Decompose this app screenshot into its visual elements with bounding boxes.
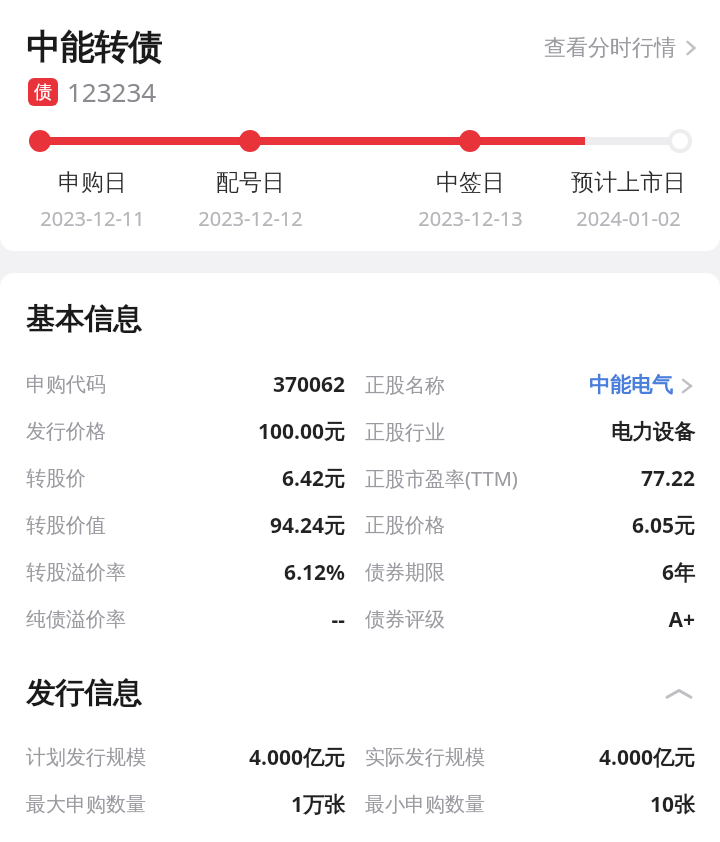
staticText: 转股价值 — [26, 513, 106, 538]
staticText: 中能电气 — [589, 372, 673, 398]
staticText: 正股名称 — [365, 373, 445, 398]
staticText: 申购日 — [58, 168, 127, 197]
staticText: 123234 — [67, 74, 157, 109]
staticText: 纯债溢价率 — [26, 607, 126, 632]
staticText: 最小申购数量 — [365, 792, 485, 817]
staticText: 查看分时行情 — [544, 34, 676, 62]
staticText: 转股价 — [26, 466, 86, 491]
staticText: 最大申购数量 — [26, 792, 146, 817]
staticText: 4.000亿元 — [249, 743, 345, 772]
button[interactable]: 查看分时行情 — [540, 30, 702, 66]
staticText: 实际发行规模 — [365, 745, 485, 770]
staticText: 预计上市日 — [571, 168, 686, 197]
staticText: 77.22 — [641, 464, 695, 493]
staticText: 6.42元 — [282, 464, 345, 493]
other: Collapse 发行信息 — [664, 685, 694, 703]
staticText: 债 — [34, 81, 52, 104]
staticText: -- — [331, 605, 345, 634]
staticText: 10张 — [649, 790, 695, 819]
staticText: 正股市盈率(TTM) — [365, 465, 518, 492]
staticText: A+ — [668, 605, 695, 634]
staticText: 申购代码 — [26, 372, 106, 397]
staticText: 6.12% — [284, 558, 345, 587]
staticText: 2023-12-12 — [198, 205, 303, 232]
staticText: 债券评级 — [365, 607, 445, 632]
staticText: 中签日 — [436, 168, 505, 197]
staticText: 基本信息 — [26, 301, 142, 338]
staticText: 发行价格 — [26, 419, 106, 444]
staticText: 计划发行规模 — [26, 745, 146, 770]
staticText: 转股溢价率 — [26, 560, 126, 585]
staticText: 100.00元 — [258, 417, 345, 446]
staticText: 正股价格 — [365, 513, 445, 538]
staticText: 中能转债 — [26, 26, 162, 69]
staticText: 370062 — [272, 370, 345, 399]
staticText: 发行信息 — [26, 675, 142, 712]
staticText: 94.24元 — [270, 511, 345, 540]
staticText: 电力设备 — [611, 419, 695, 445]
staticText: 6年 — [661, 558, 695, 587]
staticText: 6.05元 — [632, 511, 695, 540]
staticText: 债券期限 — [365, 560, 445, 585]
staticText: 2023-12-13 — [418, 205, 523, 232]
staticText: 2024-01-02 — [576, 205, 681, 232]
staticText: 1万张 — [290, 790, 345, 819]
staticText: 正股行业 — [365, 420, 445, 445]
staticText: 2023-12-11 — [40, 205, 145, 232]
staticText: 配号日 — [216, 168, 285, 197]
staticText: 4.000亿元 — [599, 743, 695, 772]
button[interactable]: 发行信息 — [0, 675, 720, 712]
